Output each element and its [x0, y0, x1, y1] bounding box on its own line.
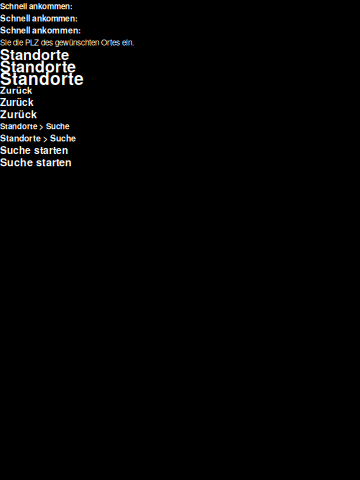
staticText: Schnell ankommen:: [0, 24, 81, 36]
staticText: Suche starten: [0, 154, 72, 170]
staticText: Standorte: [0, 54, 76, 77]
staticText: Standorte: [0, 43, 69, 64]
staticText: Suche starten: [0, 143, 68, 157]
staticText: Zurück: [0, 95, 34, 109]
staticText: Standorte: [0, 66, 84, 90]
staticText: Standorte > Suche: [0, 120, 69, 132]
staticText: Zurück: [0, 83, 32, 97]
staticText: Schnell ankommen:: [0, 12, 78, 24]
staticText: Standorte > Suche: [0, 132, 76, 144]
staticText: Zurück: [0, 106, 37, 122]
staticText: Schnell ankommen:: [0, 0, 73, 12]
staticText: Sie die PLZ des gewünschten Ortes ein.: [0, 36, 134, 48]
